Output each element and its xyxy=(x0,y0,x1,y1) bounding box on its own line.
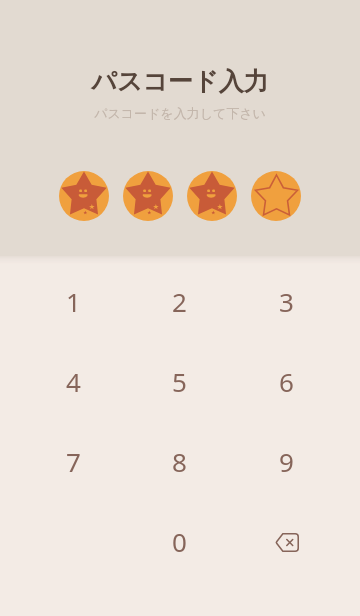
staticText: 9 xyxy=(279,444,294,479)
button[interactable]: 5 xyxy=(126,341,233,421)
button[interactable]: 7 xyxy=(20,421,126,501)
staticText: 6 xyxy=(279,364,294,399)
button[interactable]: 6 xyxy=(233,341,340,421)
button[interactable]: 9 xyxy=(233,421,340,501)
button[interactable]: 1 xyxy=(20,261,126,341)
staticText: 2 xyxy=(172,284,187,319)
button[interactable]: 0 xyxy=(126,501,233,581)
staticText: 3 xyxy=(279,284,294,319)
staticText: 4 xyxy=(66,364,81,399)
staticText: 8 xyxy=(172,444,187,479)
button[interactable]: 2 xyxy=(126,261,233,341)
button[interactable]: 3 xyxy=(233,261,340,341)
button[interactable]: Backspace xyxy=(233,501,340,581)
staticText: 0 xyxy=(172,524,187,559)
button[interactable]: 4 xyxy=(20,341,126,421)
staticText: パスコードを入力して下さい xyxy=(94,105,266,121)
staticText: パスコード入力 xyxy=(91,66,269,97)
button[interactable]: 8 xyxy=(126,421,233,501)
staticText: 7 xyxy=(66,444,81,479)
staticText: 5 xyxy=(172,364,187,399)
staticText: 1 xyxy=(66,284,81,319)
